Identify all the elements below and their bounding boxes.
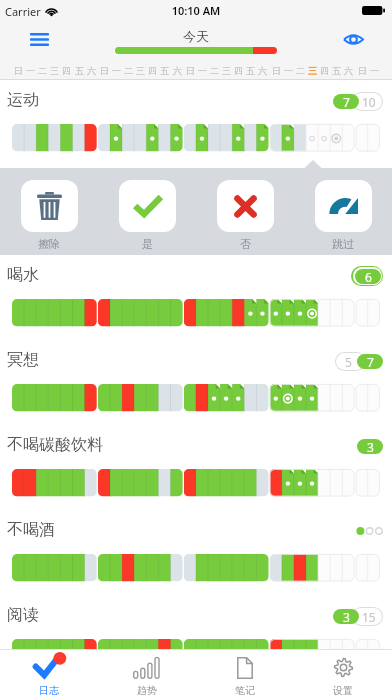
staticText: 日 — [358, 65, 367, 76]
staticText: 设置 — [333, 684, 353, 696]
button[interactable]: 运动 — [0, 80, 392, 168]
button[interactable]: Menu — [24, 28, 55, 50]
staticText: 一 — [370, 65, 379, 76]
staticText: 3 — [367, 439, 374, 454]
staticText: 四 — [62, 65, 71, 76]
button[interactable]: 日志 — [0, 650, 98, 696]
button[interactable]: 不喝碳酸饮料 — [0, 425, 392, 510]
staticText: 不喝碳酸饮料 — [7, 435, 103, 455]
staticText: 擦除 — [38, 237, 60, 251]
staticText: 是 — [142, 237, 153, 251]
staticText: 7 — [367, 354, 374, 369]
staticText: 15 — [362, 609, 376, 625]
button[interactable]: 趋势 — [98, 650, 196, 696]
staticText: 四 — [320, 65, 329, 76]
staticText: 6 — [365, 269, 372, 284]
staticText: 六 — [173, 65, 182, 76]
button[interactable]: 否 — [196, 168, 294, 263]
staticText: 日 — [186, 65, 195, 76]
button[interactable]: 阅读 — [0, 595, 392, 680]
staticText: 一 — [26, 65, 35, 76]
button[interactable]: 笔记 — [196, 650, 294, 696]
staticText: 笔记 — [235, 684, 255, 696]
staticText: 今天 — [0, 28, 392, 44]
staticText: 趋势 — [137, 684, 157, 696]
button[interactable]: 不喝酒 — [0, 510, 392, 595]
staticText: 三 — [136, 65, 145, 76]
staticText: 日 — [14, 65, 23, 76]
staticText: 四 — [234, 65, 243, 76]
staticText: 否 — [240, 237, 251, 251]
staticText: 五 — [160, 65, 169, 76]
staticText: 二 — [124, 65, 133, 76]
staticText: 六 — [258, 65, 267, 76]
staticText: 10:10 AM — [0, 3, 392, 18]
staticText: 不喝酒 — [7, 520, 55, 540]
button[interactable]: Toggle visibility — [341, 28, 365, 50]
button[interactable]: 擦除 — [0, 168, 98, 263]
button[interactable]: 喝水 — [0, 255, 392, 340]
staticText: 五 — [332, 65, 341, 76]
staticText: 运动 — [7, 90, 39, 110]
staticText: 一 — [112, 65, 121, 76]
button[interactable]: 冥想 — [0, 340, 392, 425]
staticText: 日 — [272, 65, 281, 76]
staticText: 五 — [75, 65, 84, 76]
staticText: 三 — [308, 65, 317, 76]
staticText: 10 — [362, 94, 376, 110]
staticText: 二 — [296, 65, 305, 76]
staticText: 3 — [343, 609, 350, 624]
staticText: 二 — [210, 65, 219, 76]
staticText: 5 — [345, 354, 352, 370]
staticText: 7 — [343, 94, 350, 109]
button[interactable]: 跳过 — [294, 168, 392, 263]
button[interactable]: 是 — [98, 168, 196, 263]
staticText: 三 — [222, 65, 231, 76]
staticText: Carrier — [5, 4, 41, 19]
staticText: 阅读 — [7, 605, 39, 625]
staticText: 三 — [50, 65, 59, 76]
staticText: 五 — [246, 65, 255, 76]
staticText: 六 — [344, 65, 353, 76]
staticText: 四 — [148, 65, 157, 76]
staticText: 冥想 — [7, 350, 39, 370]
staticText: 一 — [198, 65, 207, 76]
button[interactable]: 设置 — [294, 650, 392, 696]
staticText: 日 — [100, 65, 109, 76]
staticText: 六 — [87, 65, 96, 76]
staticText: 喝水 — [7, 265, 39, 285]
staticText: 日志 — [39, 684, 59, 696]
staticText: 二 — [38, 65, 47, 76]
staticText: 跳过 — [332, 237, 354, 251]
staticText: 一 — [284, 65, 293, 76]
